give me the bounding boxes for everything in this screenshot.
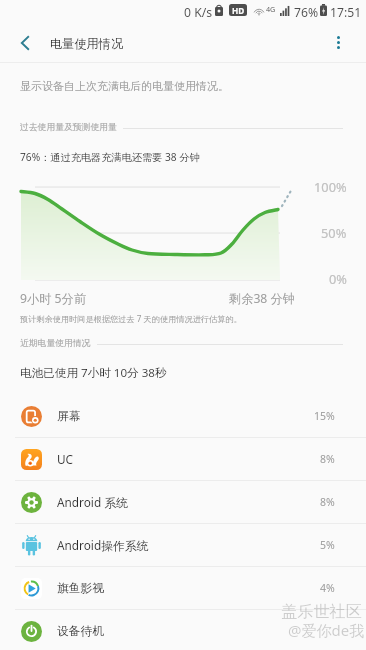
staticText: 近期电量使用情况 xyxy=(20,338,91,349)
staticText: 电量使用情况 xyxy=(50,36,124,51)
staticText: 预计剩余使用时间是根据您过去 7 天的使用情况进行估算的。 xyxy=(20,313,242,324)
staticText: 显示设备自上次充满电后的电量使用情况。 xyxy=(20,79,229,93)
staticText: 76%：通过充电器充满电还需要 38 分钟 xyxy=(20,150,200,164)
staticText: 4G xyxy=(266,4,276,14)
staticText: 4% xyxy=(320,581,335,595)
button[interactable]: 屏幕 xyxy=(0,395,366,437)
staticText: 17:51 xyxy=(330,4,362,21)
staticText: 9小时 5分前 xyxy=(20,290,86,307)
button[interactable]: More options xyxy=(318,22,366,63)
button[interactable]: 设备待机 xyxy=(0,610,366,650)
button[interactable]: Back xyxy=(0,22,48,63)
staticText: 8% xyxy=(320,452,335,466)
staticText: 0% xyxy=(329,270,347,287)
button[interactable]: Android 系统 xyxy=(0,481,366,523)
staticText: @爱你de我 xyxy=(288,620,365,640)
staticText: Android 系统 xyxy=(57,494,128,510)
staticText: 过去使用量及预测使用量 xyxy=(20,122,117,133)
button[interactable]: 旗鱼影视 xyxy=(0,567,366,609)
staticText: UC xyxy=(57,451,74,467)
staticText: 8% xyxy=(320,495,335,509)
staticText: 100% xyxy=(314,178,347,195)
staticText: 设备待机 xyxy=(57,624,105,639)
button[interactable]: Android操作系统 xyxy=(0,524,366,566)
staticText: 屏幕 xyxy=(57,409,81,424)
staticText: Android操作系统 xyxy=(57,537,149,553)
staticText: 50% xyxy=(321,224,347,241)
staticText: 电池已使用 7小时 10分 38秒 xyxy=(20,365,167,381)
staticText: 剩余38 分钟 xyxy=(229,290,295,307)
staticText: 0 K/s xyxy=(184,4,213,21)
button[interactable]: UC xyxy=(0,438,366,480)
staticText: HD xyxy=(232,5,245,16)
staticText: 76% xyxy=(294,4,319,21)
staticText: 15% xyxy=(314,409,335,423)
staticText: 旗鱼影视 xyxy=(57,581,105,596)
staticText: 5% xyxy=(320,538,335,552)
staticText: 盖乐世社区 xyxy=(281,601,362,621)
